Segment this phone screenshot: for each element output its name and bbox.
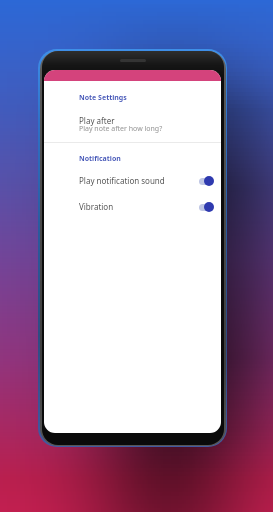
- button[interactable]: Vibration: [44, 199, 221, 214]
- staticText: Vibration: [79, 201, 114, 212]
- staticText: Play notification sound: [79, 175, 165, 186]
- staticText: Play after: [79, 115, 115, 126]
- staticText: Play note after how long?: [79, 124, 163, 134]
- button[interactable]: Play after: [44, 107, 221, 131]
- button[interactable]: Play notification sound: [44, 173, 221, 188]
- staticText: Notification: [79, 154, 121, 164]
- staticText: Note Settings: [79, 93, 127, 103]
